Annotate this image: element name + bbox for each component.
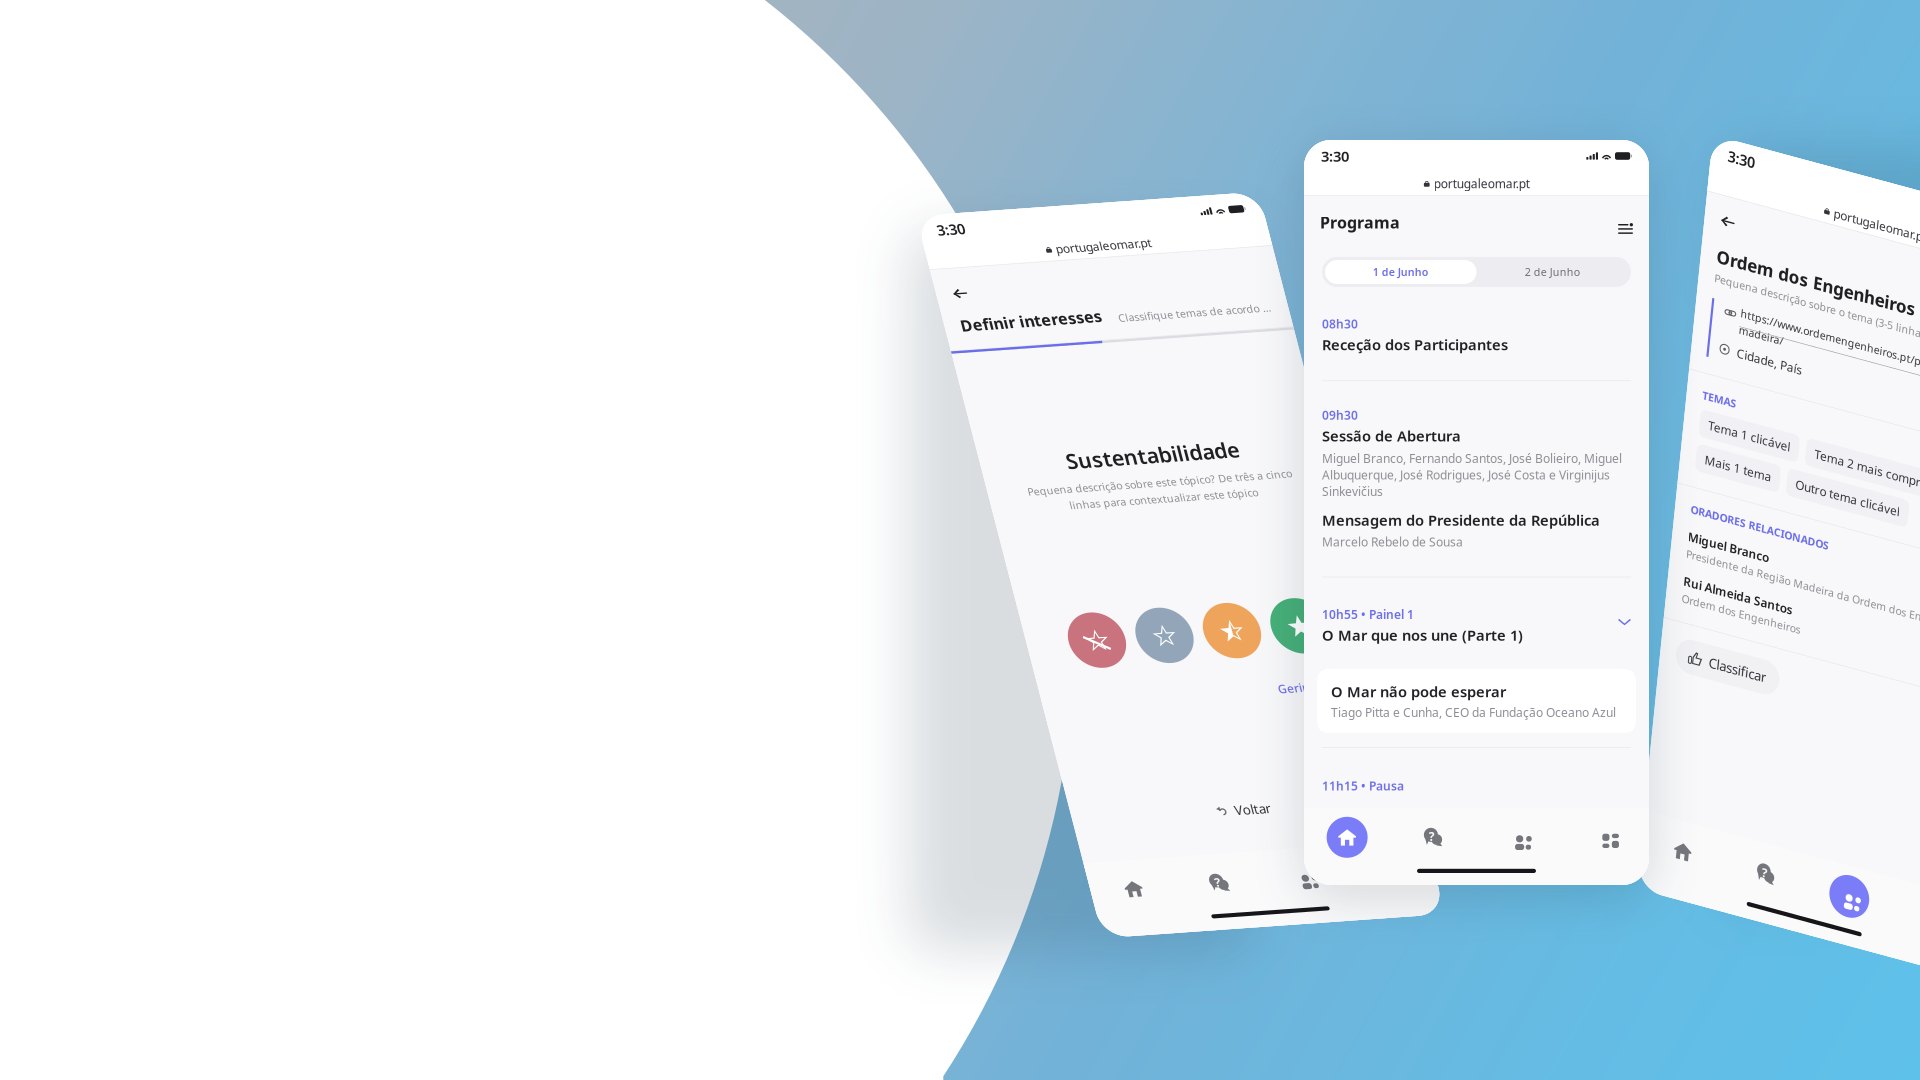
- button[interactable]: Voltar: [1061, 832, 1116, 850]
- staticText: 10h55 • Painel 1: [1322, 606, 1414, 622]
- staticText: 3:30: [1321, 146, 1349, 166]
- staticText: Cidade, País: [1759, 330, 1827, 346]
- button[interactable]: Mais: [1175, 890, 1261, 937]
- button[interactable]: Muito interessante: [1162, 630, 1219, 687]
- staticText: Sessão de Abertura: [1322, 426, 1461, 445]
- staticText: portugaleomar.pt: [1434, 175, 1530, 191]
- staticText: 1 de Junho: [1373, 265, 1429, 279]
- button[interactable]: Voltar: [932, 290, 948, 306]
- staticText: 3:30: [1730, 141, 1758, 161]
- staticText: Ordem dos Engenheiros: [1729, 239, 1920, 262]
- button[interactable]: Voltar: [1729, 207, 1745, 223]
- button[interactable]: Interessante: [1094, 630, 1151, 687]
- button[interactable]: Início: [916, 890, 1002, 937]
- button[interactable]: Participantes: [1476, 814, 1563, 861]
- staticText: Pequena descrição sobre este tópico? De …: [955, 496, 1221, 527]
- staticText: Presidente da Região Madeira da Ordem do…: [1729, 537, 1920, 552]
- staticText: 11h15 • Pausa: [1322, 778, 1404, 794]
- staticText: https://www.ordemengenheiros.pt/pt/a-ord…: [1759, 292, 1920, 322]
- staticText: 3:30: [933, 222, 961, 242]
- staticText: Classifique temas de acordo com as suas …: [1090, 327, 1245, 341]
- button[interactable]: https://www.ordemengenheiros.pt/pt/a-ord…: [1759, 292, 1920, 322]
- staticText: Receção dos Participantes: [1322, 335, 1508, 354]
- staticText: portugaleomar.pt: [1046, 251, 1142, 267]
- staticText: Voltar: [1079, 832, 1116, 850]
- button[interactable]: Rui Almeida Santos: [1729, 564, 1920, 596]
- button[interactable]: Mais: [1563, 814, 1649, 861]
- button[interactable]: 1 de Junho: [1325, 260, 1476, 284]
- staticText: Miguel Branco, Fernando Santos, José Bol…: [1322, 450, 1622, 499]
- staticText: portugaleomar.pt: [1843, 170, 1920, 186]
- button[interactable]: 2 de Junho: [1476, 260, 1628, 284]
- staticText: Tiago Pitta e Cunha, CEO da Fundação Oce…: [1331, 704, 1616, 720]
- button[interactable]: Classificar: [1729, 626, 1836, 660]
- button[interactable]: Expandir: [1618, 606, 1631, 627]
- staticText: 2 de Junho: [1525, 265, 1580, 279]
- staticText: Rui Almeida Santos: [1729, 564, 1842, 579]
- staticText: Ordem dos Engenheiros: [1729, 581, 1852, 596]
- staticText: Sustentabilidade: [1001, 461, 1175, 489]
- staticText: ?: [1429, 828, 1435, 844]
- staticText: Mais 1 tema: [1738, 441, 1807, 457]
- button[interactable]: Filtros: [1618, 215, 1633, 230]
- button[interactable]: Início: [1304, 814, 1390, 861]
- staticText: Mensagem do Presidente da República: [1322, 510, 1600, 530]
- staticText: ORADORES RELACIONADOS: [1729, 493, 1872, 507]
- staticText: O Mar que nos une (Parte 1): [1322, 625, 1523, 645]
- staticText: 09h30: [1322, 407, 1358, 423]
- staticText: O Mar não pode esperar: [1331, 682, 1506, 701]
- button[interactable]: Perguntas: [1002, 890, 1088, 937]
- staticText: Pequena descrição sobre o tema (3-5 linh…: [1729, 265, 1920, 279]
- button[interactable]: Tema 1 clicável: [1729, 402, 1832, 429]
- button[interactable]: Participantes: [1088, 890, 1175, 937]
- staticText: Marcelo Rebelo de Sousa: [1322, 534, 1463, 550]
- staticText: Miguel Branco: [1729, 519, 1813, 535]
- staticText: 08h30: [1322, 316, 1358, 332]
- button[interactable]: Outro tema clicável: [1823, 436, 1920, 463]
- button[interactable]: Pouco interesse: [1026, 630, 1083, 687]
- button[interactable]: Mais 1 tema: [1729, 436, 1816, 463]
- staticText: Definir interesses: [932, 320, 1074, 341]
- staticText: Programa: [1320, 212, 1400, 233]
- button[interactable]: O Mar não pode esperar: [1317, 669, 1636, 733]
- button[interactable]: Miguel Branco: [1729, 519, 1920, 552]
- button[interactable]: Perguntas: [1390, 814, 1476, 861]
